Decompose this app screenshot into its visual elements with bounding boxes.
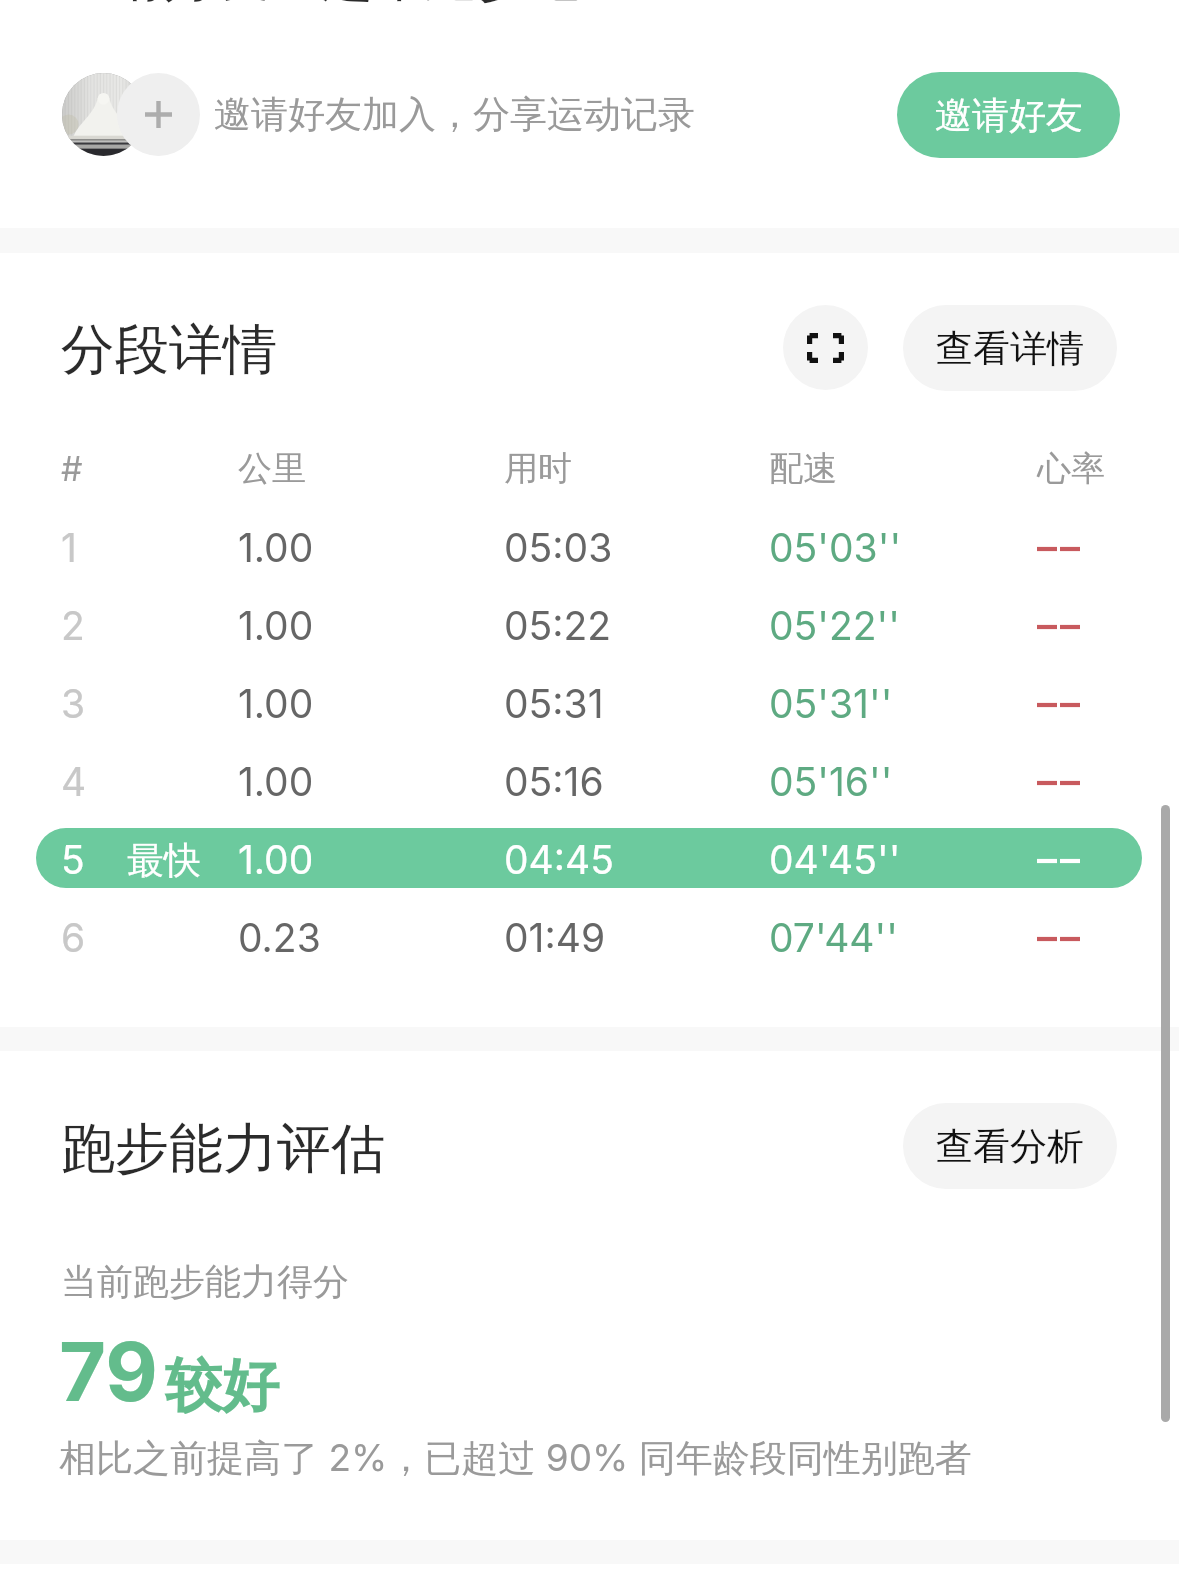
staticText: 当前跑步能力得分: [61, 1259, 349, 1304]
staticText: 1.00: [238, 758, 314, 805]
staticText: 心率: [1037, 447, 1105, 490]
button[interactable]: Add friend: [117, 73, 200, 156]
staticText: 04'45'': [769, 836, 901, 883]
staticText: 6: [61, 914, 86, 961]
staticText: 05:31: [504, 680, 604, 727]
button[interactable]: [36, 828, 1142, 888]
staticText: 0.23: [238, 914, 321, 961]
staticText: 查看详情: [936, 325, 1084, 372]
staticText: 05:03: [504, 524, 613, 571]
staticText: 05:16: [504, 758, 604, 805]
staticText: 较好: [165, 1350, 279, 1422]
staticText: 最快: [127, 837, 201, 884]
staticText: 04:45: [504, 836, 614, 883]
button[interactable]: 邀请好友: [897, 72, 1120, 158]
staticText: 1: [61, 524, 77, 571]
staticText: 1.00: [238, 680, 314, 727]
staticText: 邀请好友一起来跑步吧: [61, 0, 581, 11]
staticText: 1.00: [238, 524, 314, 571]
staticText: 跑步能力评估: [61, 1115, 385, 1183]
staticText: #: [61, 448, 83, 489]
staticText: 07'44'': [769, 914, 898, 961]
button[interactable]: 查看详情: [903, 305, 1117, 391]
staticText: 01:49: [504, 914, 606, 961]
staticText: 配速: [769, 447, 837, 490]
staticText: 查看分析: [936, 1123, 1084, 1170]
staticText: 1.00: [238, 602, 314, 649]
staticText: 用时: [504, 447, 572, 490]
button[interactable]: Fullscreen: [783, 305, 868, 390]
staticText: 公里: [238, 447, 306, 490]
staticText: 3: [61, 680, 86, 727]
staticText: 05'22'': [769, 602, 900, 649]
staticText: 05:22: [504, 602, 612, 649]
staticText: 邀请好友加入，分享运动记录: [214, 91, 695, 138]
button[interactable]: 查看分析: [903, 1103, 1117, 1189]
staticText: 邀请好友: [935, 92, 1083, 139]
staticText: 79: [59, 1323, 158, 1421]
staticText: 05'03'': [769, 524, 902, 571]
staticText: 1.00: [238, 836, 314, 883]
staticText: 2: [61, 602, 85, 649]
staticText: 05'31'': [769, 680, 893, 727]
staticText: 分段详情: [61, 316, 277, 384]
staticText: 4: [61, 758, 87, 805]
staticText: 05'16'': [769, 758, 893, 805]
staticText: 相比之前提高了 2%，已超过 90% 同年龄段同性别跑者: [59, 1435, 972, 1482]
staticText: 5: [61, 836, 85, 883]
